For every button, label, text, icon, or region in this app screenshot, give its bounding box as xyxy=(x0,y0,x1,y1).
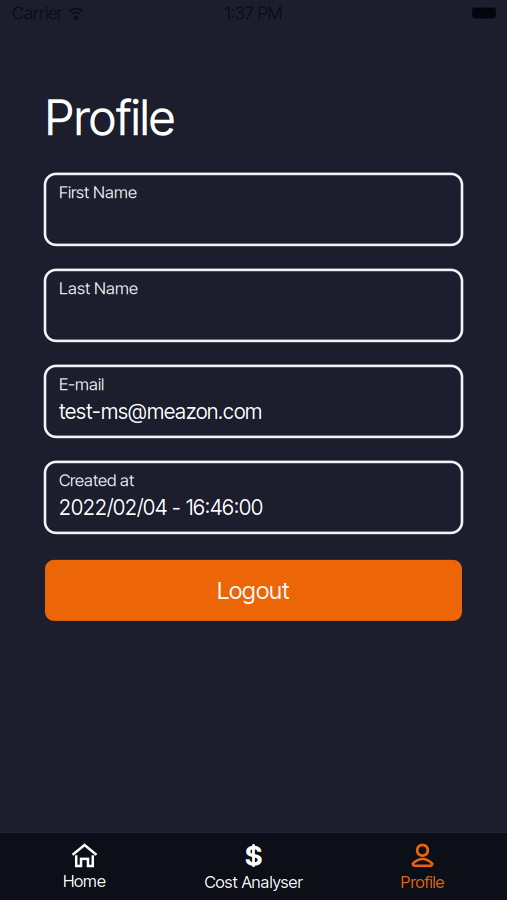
staticText: Carrier xyxy=(12,2,63,24)
staticText: 1:37 PM xyxy=(224,2,282,24)
staticText: 2022/02/04 - 16:46:00 xyxy=(59,495,263,520)
button[interactable]: Home xyxy=(0,836,169,897)
staticText: Cost Analyser xyxy=(204,872,302,892)
button[interactable]: Profile xyxy=(338,835,507,898)
button[interactable]: S xyxy=(169,835,338,898)
staticText: Profile xyxy=(400,872,444,892)
staticText: Created at xyxy=(59,470,134,490)
staticText: E-mail xyxy=(59,374,104,394)
staticText: S xyxy=(244,839,262,872)
button[interactable]: Logout xyxy=(45,560,462,621)
staticText: Profile xyxy=(45,88,175,147)
staticText: Logout xyxy=(217,576,290,605)
staticText: First Name xyxy=(59,182,137,202)
staticText: Home xyxy=(63,871,106,891)
staticText: Last Name xyxy=(59,278,138,298)
staticText: test-ms@meazon.com xyxy=(59,399,262,424)
